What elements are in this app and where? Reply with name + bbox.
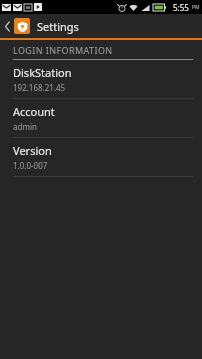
staticText: Settings: [37, 19, 79, 34]
staticText: LOGIN INFORMATION: [13, 44, 113, 56]
button[interactable]: Version: [0, 138, 202, 176]
staticText: admin: [13, 121, 37, 132]
button[interactable]: DiskStation: [0, 60, 202, 98]
button[interactable]: Account: [0, 99, 202, 137]
staticText: 1.0.0-007: [13, 160, 48, 171]
staticText: PM: [192, 4, 200, 11]
staticText: 192.168.21.45: [13, 82, 66, 93]
staticText: Version: [13, 143, 52, 158]
staticText: 5:55: [173, 2, 189, 13]
staticText: Account: [13, 104, 55, 119]
staticText: DiskStation: [13, 65, 72, 80]
button[interactable]: Navigate up: [0, 14, 14, 38]
